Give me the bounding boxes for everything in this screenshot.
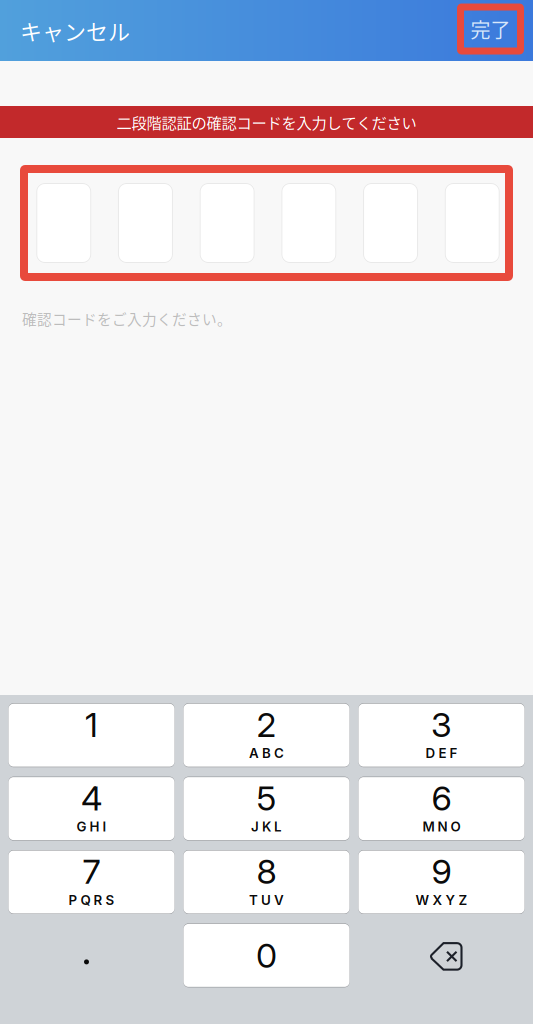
staticText: 完了 xyxy=(470,14,510,43)
button[interactable]: 確認コード 4 桁目 xyxy=(281,183,336,263)
button[interactable]: 確認コード 2 桁目 xyxy=(118,183,173,263)
staticText: 4 xyxy=(81,777,102,819)
button[interactable]: 確認コード 6 桁目 xyxy=(445,183,500,263)
button[interactable]: 確認コード 3 桁目 xyxy=(200,183,255,263)
staticText: キャンセル xyxy=(20,15,130,46)
staticText: 9 xyxy=(431,851,451,892)
button[interactable]: 0 xyxy=(183,923,349,987)
staticText: W X Y Z xyxy=(415,892,467,908)
staticText: 0 xyxy=(256,935,277,976)
button[interactable]: 1 xyxy=(8,703,174,767)
staticText: G H I xyxy=(76,819,106,835)
staticText: 二段階認証の確認コードを入力してください xyxy=(116,111,416,133)
staticText: J K L xyxy=(251,819,282,835)
button[interactable]: 完了 xyxy=(464,10,517,47)
button[interactable]: Delete xyxy=(358,923,524,987)
staticText: 7 xyxy=(82,851,100,892)
staticText: 1 xyxy=(85,704,98,745)
staticText: 5 xyxy=(256,777,276,819)
button[interactable]: 確認コード 5 桁目 xyxy=(363,183,418,263)
button[interactable]: 確認コード 1 桁目 xyxy=(36,183,91,263)
staticText: D E F xyxy=(425,745,457,761)
button[interactable]: 4 xyxy=(8,777,174,841)
staticText: T U V xyxy=(249,892,284,908)
staticText: M N O xyxy=(422,819,460,835)
staticText: 8 xyxy=(256,851,276,892)
staticText: 6 xyxy=(431,777,451,819)
button[interactable]: キャンセル xyxy=(0,0,150,61)
staticText: 2 xyxy=(256,704,276,745)
button[interactable]: 5 xyxy=(183,777,349,841)
button[interactable]: 2 xyxy=(183,703,349,767)
button[interactable]: 7 xyxy=(8,850,174,914)
button[interactable]: 3 xyxy=(358,703,524,767)
staticText: 確認コードをご入力ください。 xyxy=(22,308,232,329)
button[interactable]: 9 xyxy=(358,850,524,914)
staticText: P Q R S xyxy=(68,892,114,908)
button[interactable]: 6 xyxy=(358,777,524,841)
button[interactable]: Period xyxy=(8,923,174,987)
button[interactable]: 8 xyxy=(183,850,349,914)
staticText: 3 xyxy=(431,704,452,745)
staticText: A B C xyxy=(249,745,284,761)
